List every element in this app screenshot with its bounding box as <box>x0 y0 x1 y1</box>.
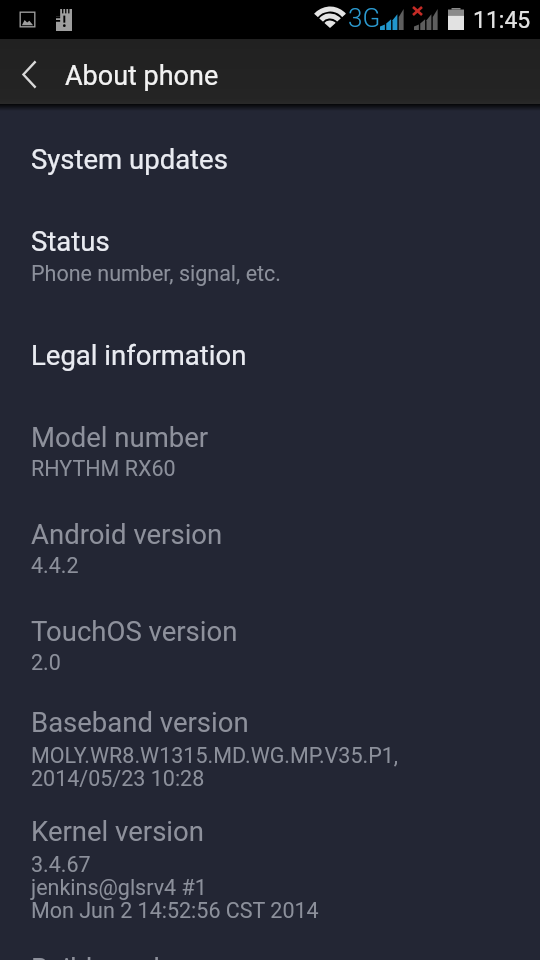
staticText: 2.0 <box>31 650 61 675</box>
staticText: About phone <box>65 60 219 92</box>
staticText: Android version <box>31 518 223 550</box>
button[interactable]: Model number <box>0 371 540 481</box>
staticText: RHYTHM RX60 <box>31 456 176 481</box>
button[interactable]: TouchOS version <box>0 578 540 676</box>
button[interactable]: Android version <box>0 481 540 578</box>
button[interactable]: Status <box>0 175 540 286</box>
button[interactable]: System updates <box>0 111 540 175</box>
staticText: 4.4.2 <box>31 553 79 578</box>
staticText: Legal information <box>31 339 247 371</box>
staticText: Baseband version <box>31 706 249 738</box>
button[interactable]: Legal information <box>0 286 540 371</box>
staticText: MOLY.WR8.W1315.MD.WG.MP.V35.P1, 2014/05/… <box>31 743 399 791</box>
button[interactable]: Navigate up <box>0 39 57 104</box>
button[interactable]: Baseband version <box>0 676 540 792</box>
staticText: Model number <box>31 421 209 453</box>
staticText: Status <box>31 225 110 257</box>
staticText: System updates <box>31 143 228 175</box>
button[interactable]: Kernel version <box>0 792 540 923</box>
staticText: Phone number, signal, etc. <box>31 261 282 286</box>
staticText: TouchOS version <box>31 615 238 647</box>
staticText: Kernel version <box>31 815 204 847</box>
button[interactable]: Build number <box>0 923 540 960</box>
staticText: 11:45 <box>473 7 531 34</box>
staticText: Build number <box>31 952 193 960</box>
staticText: 3G <box>348 3 381 33</box>
staticText: 3.4.67 jenkins@glsrv4 #1 Mon Jun 2 14:52… <box>31 852 319 923</box>
